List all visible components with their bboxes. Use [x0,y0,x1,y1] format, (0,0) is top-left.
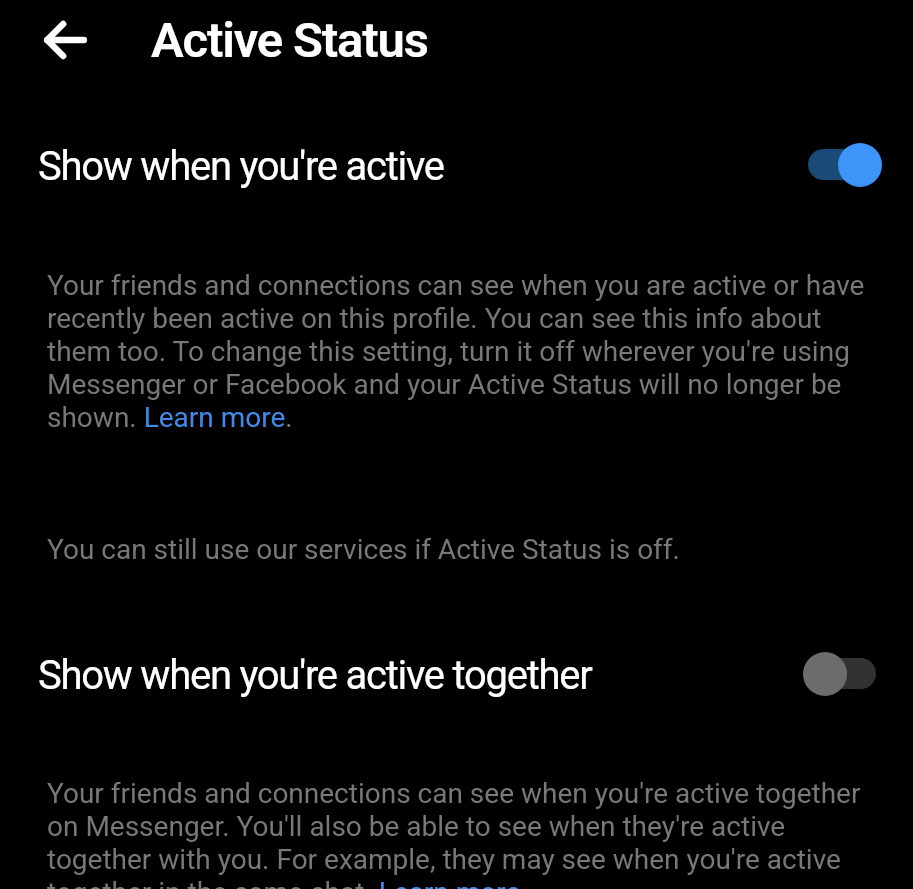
staticText: Active Status [151,12,428,69]
staticText: Show when you're active together [38,652,592,699]
staticText: Your friends and connections can see whe… [47,269,877,434]
button[interactable]: Back [41,16,89,64]
button[interactable]: Learn more [144,401,288,433]
staticText: Show when you're active [38,143,444,190]
button[interactable]: Show when you're active [0,142,913,190]
staticText: You can still use our services if Active… [47,533,680,566]
button[interactable]: Show when you're active together toggle [808,651,882,699]
staticText: Your friends and connections can see whe… [47,777,877,889]
button[interactable]: Show when you're active toggle [808,142,882,190]
button[interactable]: Show when you're active together [0,651,913,699]
button[interactable]: Learn more [379,876,521,889]
